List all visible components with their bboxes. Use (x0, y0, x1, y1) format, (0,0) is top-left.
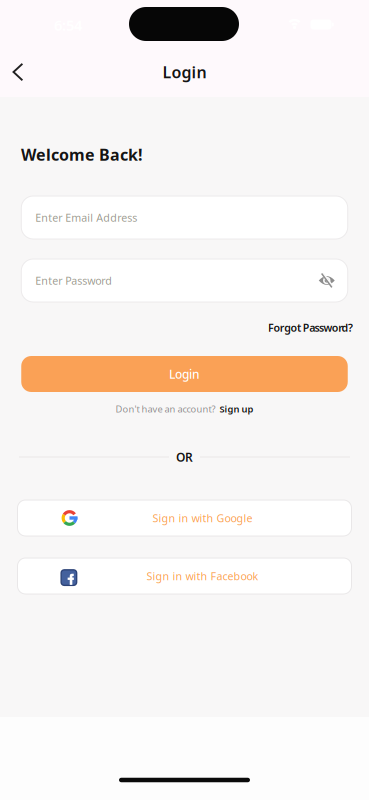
button[interactable]: Show password (318, 272, 336, 288)
button[interactable]: Sign in with Facebook (17, 558, 351, 594)
staticText: Sign in with Facebook (146, 569, 258, 583)
button[interactable]: Login (21, 356, 348, 392)
staticText: Don't have an account? (115, 403, 215, 415)
button[interactable]: Sign up (219, 403, 253, 415)
staticText: OR (176, 449, 193, 465)
staticText: Sign up (219, 403, 253, 415)
button[interactable]: Forgot Password? (268, 320, 353, 335)
staticText: Sign in with Google (152, 511, 252, 525)
staticText: Enter Password (35, 273, 112, 288)
button[interactable]: Back (9, 61, 33, 85)
staticText: Enter Email Address (35, 210, 137, 225)
staticText: Login (162, 61, 206, 83)
staticText: Forgot Password? (268, 320, 353, 335)
button[interactable]: Sign in with Google (17, 500, 351, 536)
textField[interactable]: Enter Email Address (35, 210, 348, 225)
staticText: Login (169, 366, 200, 382)
staticText: Welcome Back! (21, 144, 143, 165)
secureTextField[interactable]: Enter Password (35, 273, 168, 288)
